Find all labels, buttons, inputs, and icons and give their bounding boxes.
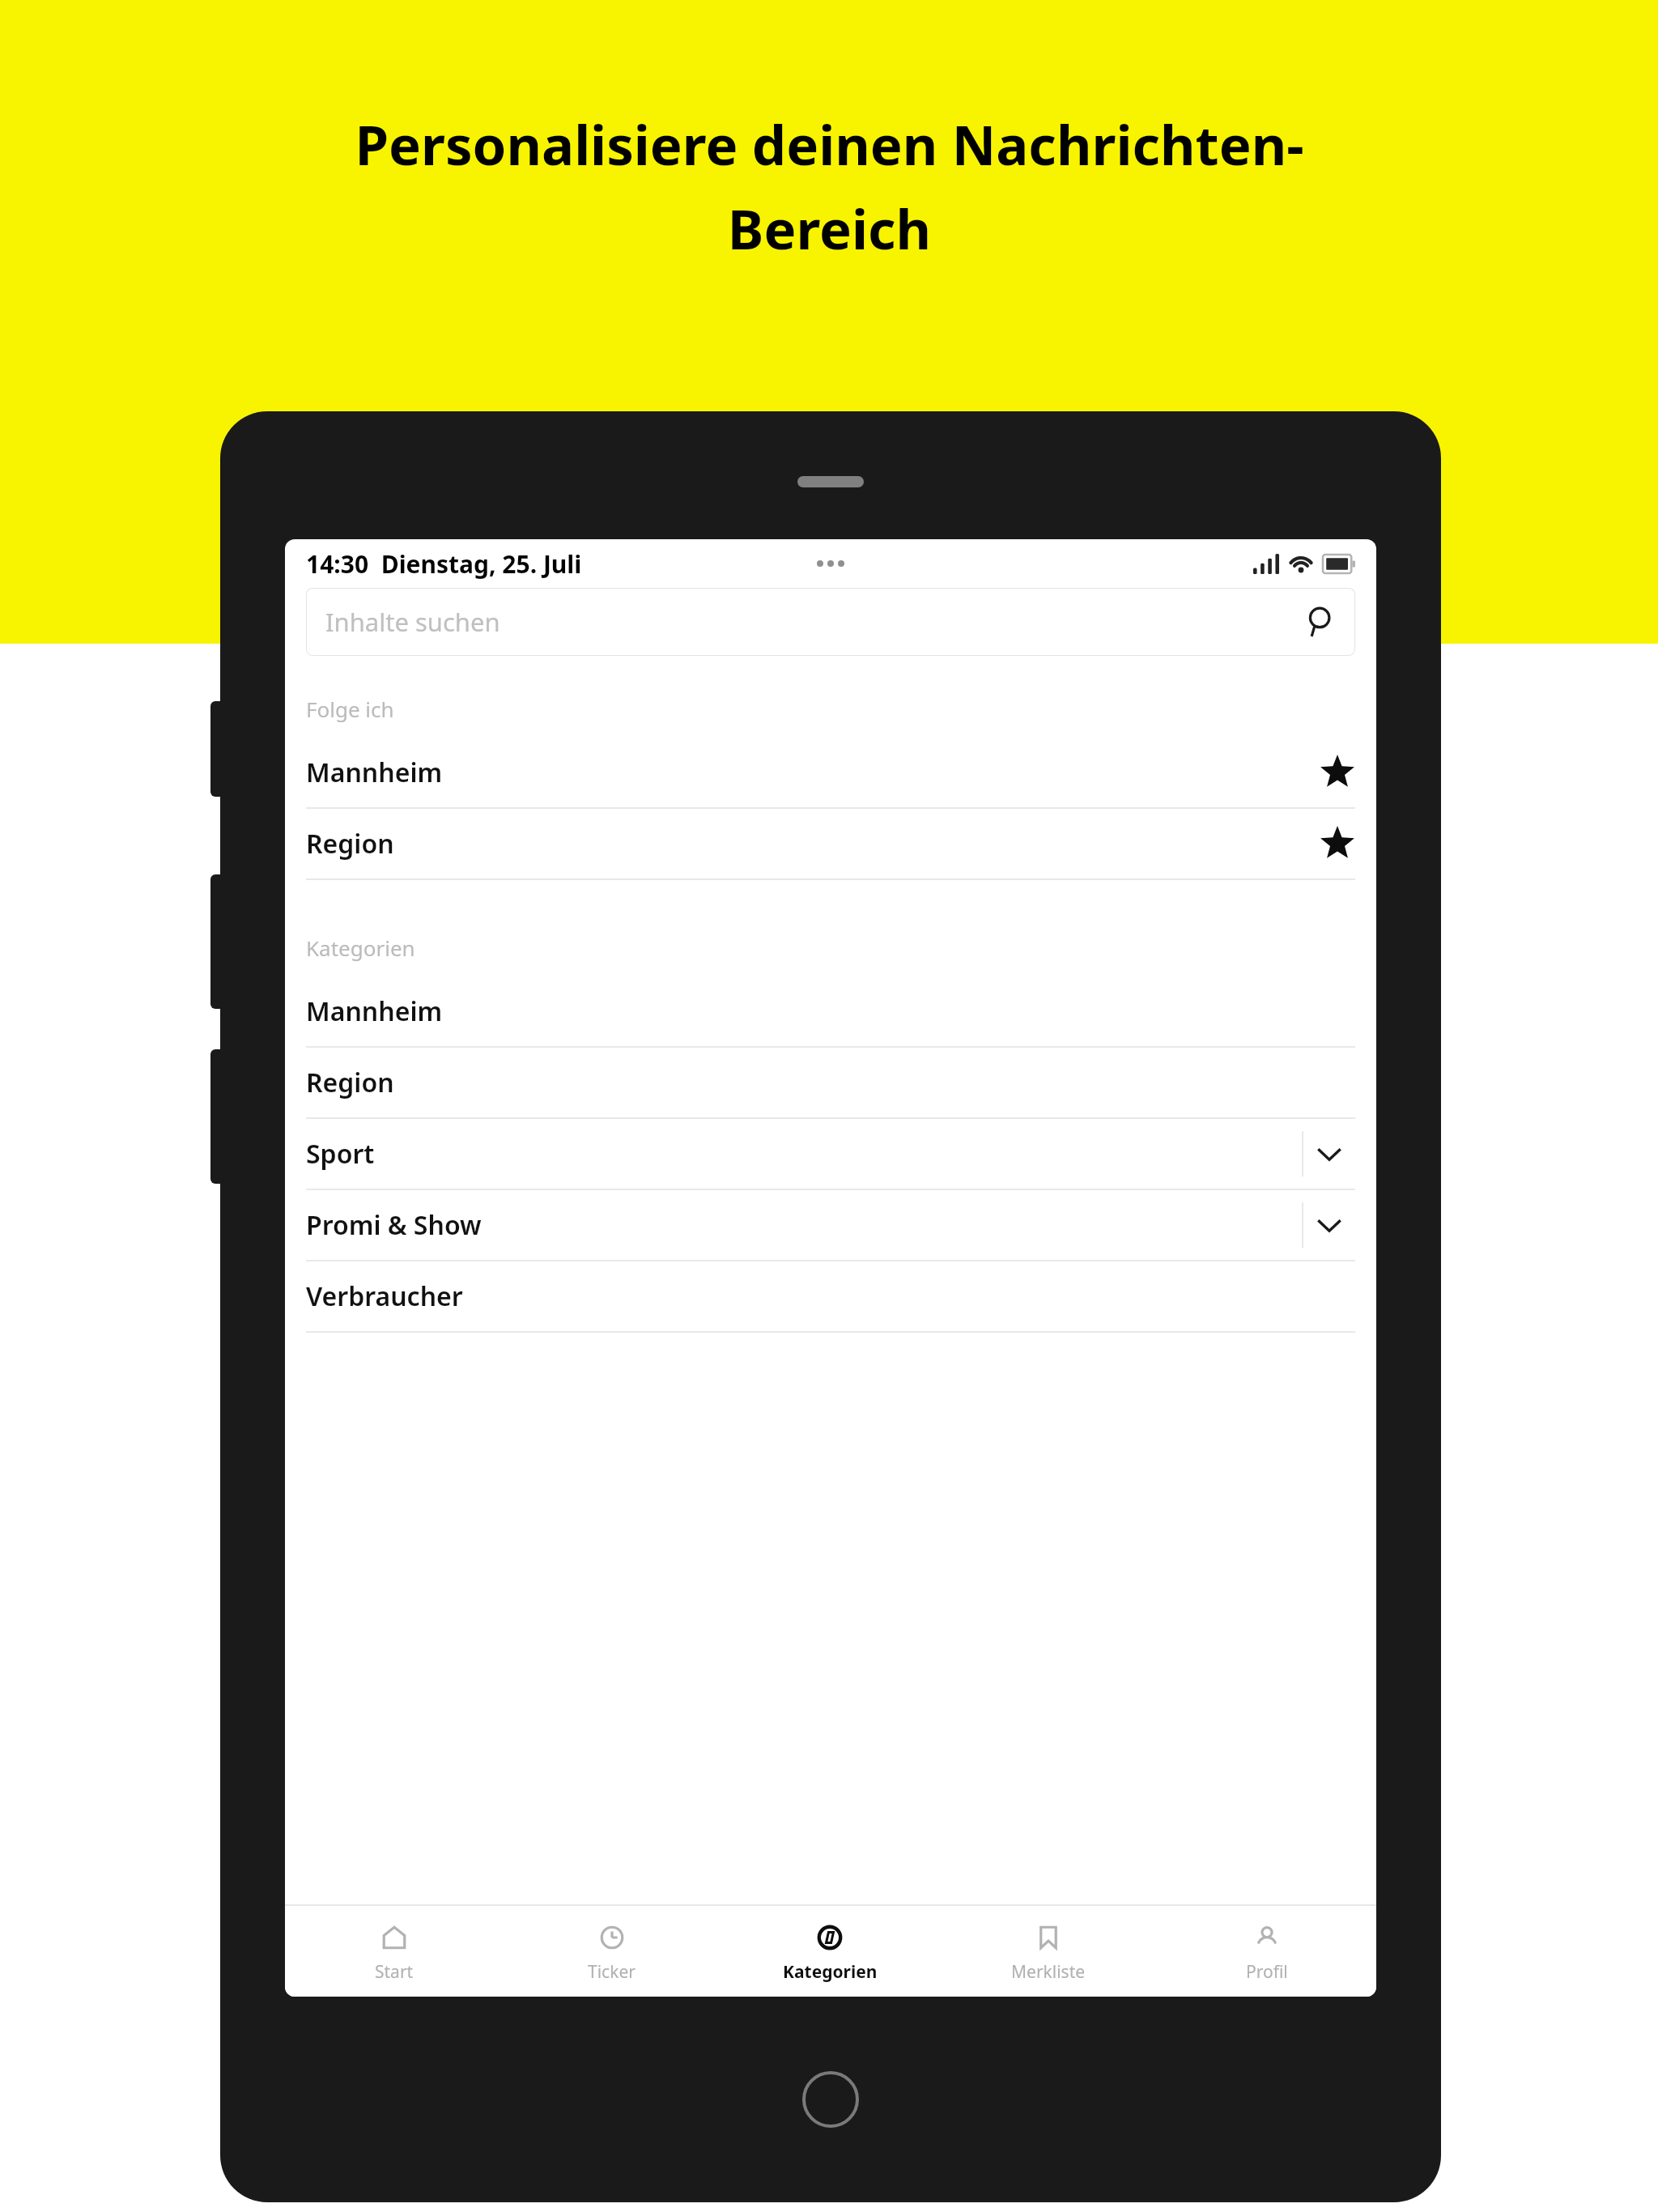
button[interactable]: Mannheim bbox=[285, 738, 1376, 809]
staticText: Region bbox=[306, 1065, 394, 1100]
staticText: Ticker bbox=[588, 1960, 636, 1984]
button[interactable]: Region bbox=[285, 809, 1376, 880]
staticText: Mannheim bbox=[306, 993, 443, 1029]
button[interactable]: Folgen bbox=[1320, 826, 1355, 861]
staticText: Personalisiere deinen Nachrichten- Berei… bbox=[355, 107, 1304, 266]
button[interactable]: Suchen bbox=[1303, 605, 1337, 639]
button[interactable]: Promi & Show bbox=[285, 1190, 1376, 1261]
button[interactable]: Aufklappen bbox=[1303, 1199, 1355, 1251]
staticText: Promi & Show bbox=[306, 1207, 482, 1243]
staticText: Kategorien bbox=[783, 1960, 878, 1984]
button[interactable]: Sport bbox=[285, 1119, 1376, 1190]
button[interactable]: Folgen bbox=[1320, 755, 1355, 790]
staticText: 14:30 Dienstag, 25. Juli bbox=[306, 547, 582, 581]
button[interactable]: Start bbox=[285, 1906, 503, 1997]
button[interactable]: Kategorien bbox=[721, 1906, 939, 1997]
button[interactable]: Merkliste bbox=[939, 1906, 1158, 1997]
button[interactable]: Aufklappen bbox=[1303, 1128, 1355, 1180]
staticText: Start bbox=[375, 1960, 414, 1984]
staticText: Verbraucher bbox=[306, 1278, 463, 1314]
staticText: Merkliste bbox=[1011, 1960, 1086, 1984]
staticText: Folge ich bbox=[306, 695, 394, 723]
staticText: Inhalte suchen bbox=[325, 605, 500, 639]
button[interactable]: Mannheim bbox=[285, 976, 1376, 1048]
button[interactable]: Home bbox=[802, 2071, 859, 2128]
staticText: Mannheim bbox=[306, 755, 443, 790]
button[interactable]: Ticker bbox=[503, 1906, 721, 1997]
staticText: Kategorien bbox=[306, 934, 415, 962]
staticText: Profil bbox=[1246, 1960, 1288, 1984]
button[interactable]: Verbraucher bbox=[285, 1261, 1376, 1333]
staticText: Region bbox=[306, 826, 394, 861]
staticText: Sport bbox=[306, 1136, 375, 1172]
button[interactable]: Inhalte suchen bbox=[306, 588, 1355, 656]
button[interactable]: Profil bbox=[1158, 1906, 1376, 1997]
button[interactable]: Region bbox=[285, 1048, 1376, 1119]
